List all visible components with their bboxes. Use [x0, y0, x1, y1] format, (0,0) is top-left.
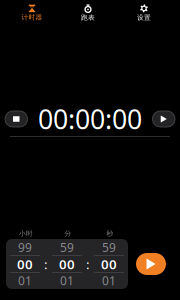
button[interactable]: Stop	[5, 111, 27, 127]
button[interactable]: Play	[152, 111, 175, 127]
staticText: :	[44, 255, 48, 273]
staticText: 00	[59, 255, 75, 273]
button[interactable]: 计时器	[4, 3, 60, 23]
staticText: 秒	[106, 229, 113, 238]
staticText: 01	[102, 273, 116, 289]
staticText: 设置	[137, 13, 151, 22]
button[interactable]: 跑表	[60, 3, 116, 23]
staticText: 59	[60, 239, 74, 255]
staticText: 跑表	[81, 13, 95, 22]
button[interactable]: Start timer	[136, 253, 166, 275]
staticText: 00:00:00	[38, 101, 142, 137]
staticText: 小时	[19, 229, 33, 238]
staticText: 59	[102, 239, 116, 255]
staticText: 计时器	[21, 13, 42, 21]
staticText: :	[86, 255, 90, 273]
button[interactable]: 设置	[116, 3, 172, 23]
staticText: 00	[17, 255, 33, 273]
staticText: 00	[101, 255, 117, 273]
staticText: 分	[64, 229, 71, 238]
staticText: 01	[60, 273, 74, 289]
staticText: 01	[18, 273, 32, 289]
staticText: 99	[18, 239, 32, 255]
